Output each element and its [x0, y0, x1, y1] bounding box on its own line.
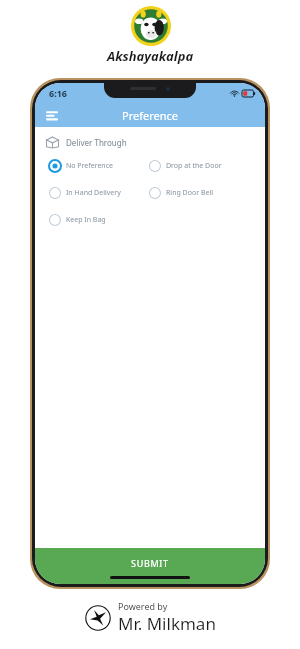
button[interactable]: Keep In Bag — [49, 212, 149, 228]
staticText: Powered by — [118, 600, 168, 612]
staticText: Ring Door Bell — [166, 188, 214, 198]
staticText: SUBMIT — [131, 557, 169, 569]
button[interactable]: In Hand Delivery — [49, 185, 149, 201]
staticText: Preference — [122, 108, 178, 123]
button[interactable]: No Preference — [49, 158, 149, 174]
staticText: Drop at the Door — [166, 161, 222, 171]
staticText: In Hand Delivery — [66, 188, 121, 198]
button[interactable]: Drop at the Door — [149, 158, 259, 174]
staticText: Deliver Through — [66, 137, 127, 148]
staticText: Mr. Milkman — [118, 612, 216, 635]
staticText: 6:16 — [49, 87, 67, 99]
button[interactable]: Open navigation menu — [42, 105, 62, 125]
button[interactable]: Ring Door Bell — [149, 185, 259, 201]
staticText: Keep In Bag — [66, 215, 106, 225]
button[interactable]: SUBMIT — [35, 548, 265, 584]
staticText: Akshayakalpa — [107, 47, 194, 65]
staticText: No Preference — [66, 161, 113, 171]
